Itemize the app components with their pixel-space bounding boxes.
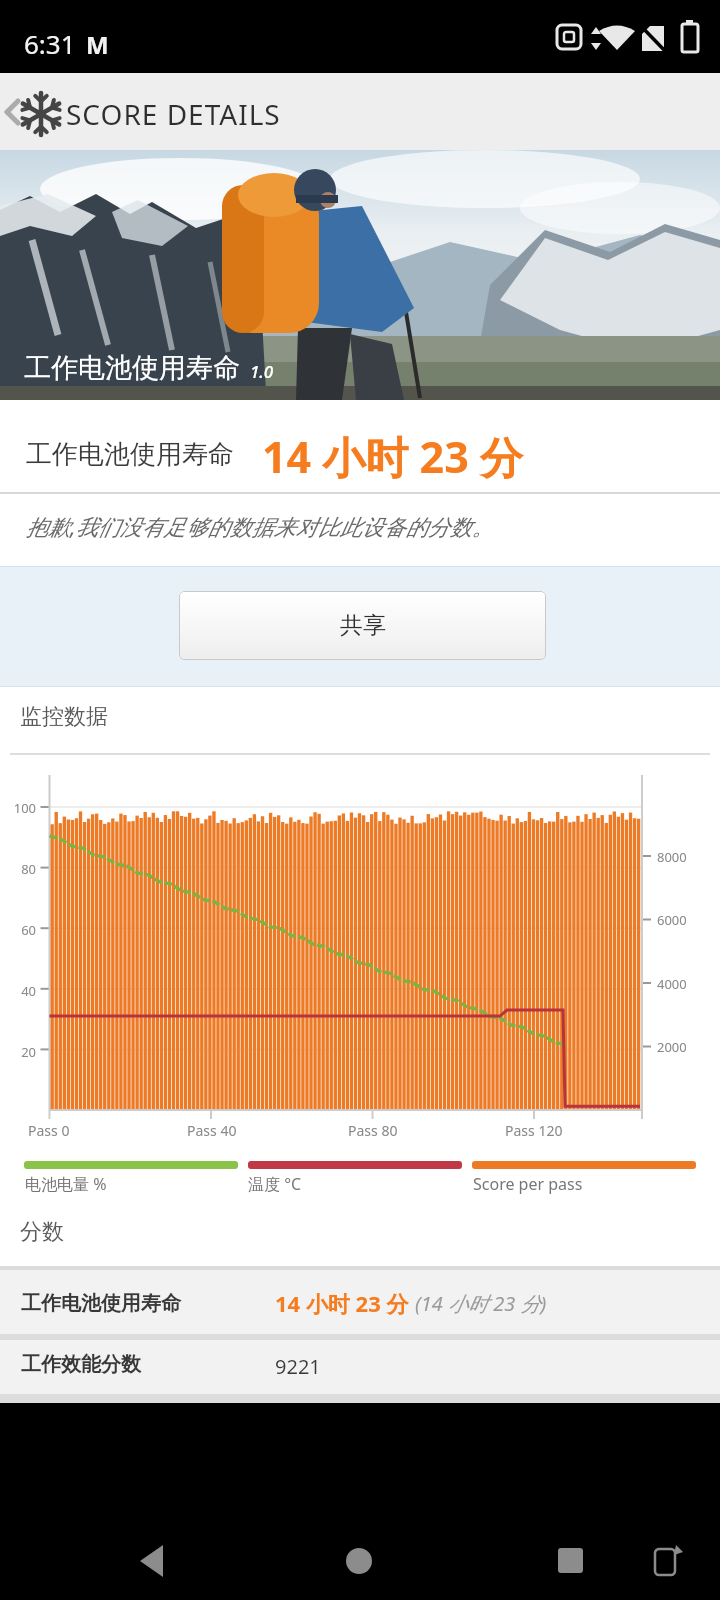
staticText: 抱歉,我们没有足够的数据来对比此设备的分数。 — [26, 511, 494, 541]
staticText: Score per pass — [473, 1173, 583, 1195]
staticText: 工作效能分数 — [21, 1352, 141, 1377]
staticText: 1.0 — [250, 360, 274, 383]
staticText: 60 — [0, 921, 36, 939]
staticText: SCORE DETAILS — [66, 95, 281, 133]
staticText: 监控数据 — [20, 703, 108, 731]
staticText: 工作电池使用寿命 — [26, 438, 234, 471]
button[interactable] — [0, 1340, 720, 1394]
staticText: Pass 120 — [505, 1121, 563, 1140]
staticText: 6:31 — [24, 26, 76, 61]
staticText: 14 小时 23 分 — [275, 1288, 409, 1318]
staticText: Pass 80 — [348, 1121, 398, 1140]
staticText: 电池电量 % — [25, 1173, 107, 1195]
button[interactable] — [513, 1530, 603, 1592]
button[interactable] — [0, 73, 60, 150]
button[interactable]: 共享 — [179, 591, 546, 660]
staticText: 9221 — [275, 1353, 321, 1380]
staticText: Pass 0 — [28, 1121, 70, 1140]
staticText: 工作电池使用寿命 — [21, 1291, 181, 1316]
button[interactable] — [115, 1530, 205, 1592]
staticText: 20 — [0, 1043, 36, 1061]
staticText: 分数 — [20, 1218, 64, 1246]
staticText: 100 — [0, 799, 36, 817]
staticText: 共享 — [340, 611, 386, 640]
staticText: 2000 — [657, 1038, 687, 1056]
staticText: (14 小时 23 分) — [415, 1290, 547, 1317]
staticText: 14 小时 23 分 — [262, 427, 523, 486]
staticText: 工作电池使用寿命 — [24, 351, 240, 385]
button[interactable] — [640, 1530, 700, 1592]
staticText: Pass 40 — [187, 1121, 237, 1140]
staticText: 6000 — [657, 911, 687, 929]
button[interactable] — [315, 1530, 405, 1592]
staticText: 8000 — [657, 848, 687, 866]
staticText: M — [86, 28, 109, 61]
staticText: 4000 — [657, 975, 687, 993]
staticText: 40 — [0, 982, 36, 1000]
button[interactable] — [0, 1270, 720, 1334]
staticText: 温度 °C — [248, 1173, 302, 1195]
staticText: 80 — [0, 860, 36, 878]
